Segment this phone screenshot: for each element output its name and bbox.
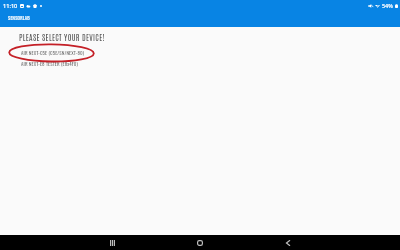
staticText: AIR NEXT-C5E (C5E/SN/NEXT-80) bbox=[21, 49, 85, 56]
button[interactable]: Back bbox=[258, 235, 318, 250]
staticText: AIR NEXT-E8 TESTER (E8x4F0) bbox=[21, 60, 78, 67]
staticText: 11:10 bbox=[3, 2, 18, 10]
button[interactable]: AIR NEXT-E8 TESTER (E8x4F0) bbox=[0, 59, 400, 68]
staticText: SENSORLAB bbox=[8, 15, 30, 22]
button[interactable]: AIR NEXT-C5E (C5E/SN/NEXT-80) bbox=[0, 48, 400, 57]
staticText: PLEASE SELECT YOUR DEVICE! bbox=[19, 32, 105, 42]
staticText: 54% bbox=[382, 2, 393, 9]
button[interactable]: Recent apps bbox=[82, 235, 142, 250]
button[interactable]: Home bbox=[170, 235, 230, 250]
